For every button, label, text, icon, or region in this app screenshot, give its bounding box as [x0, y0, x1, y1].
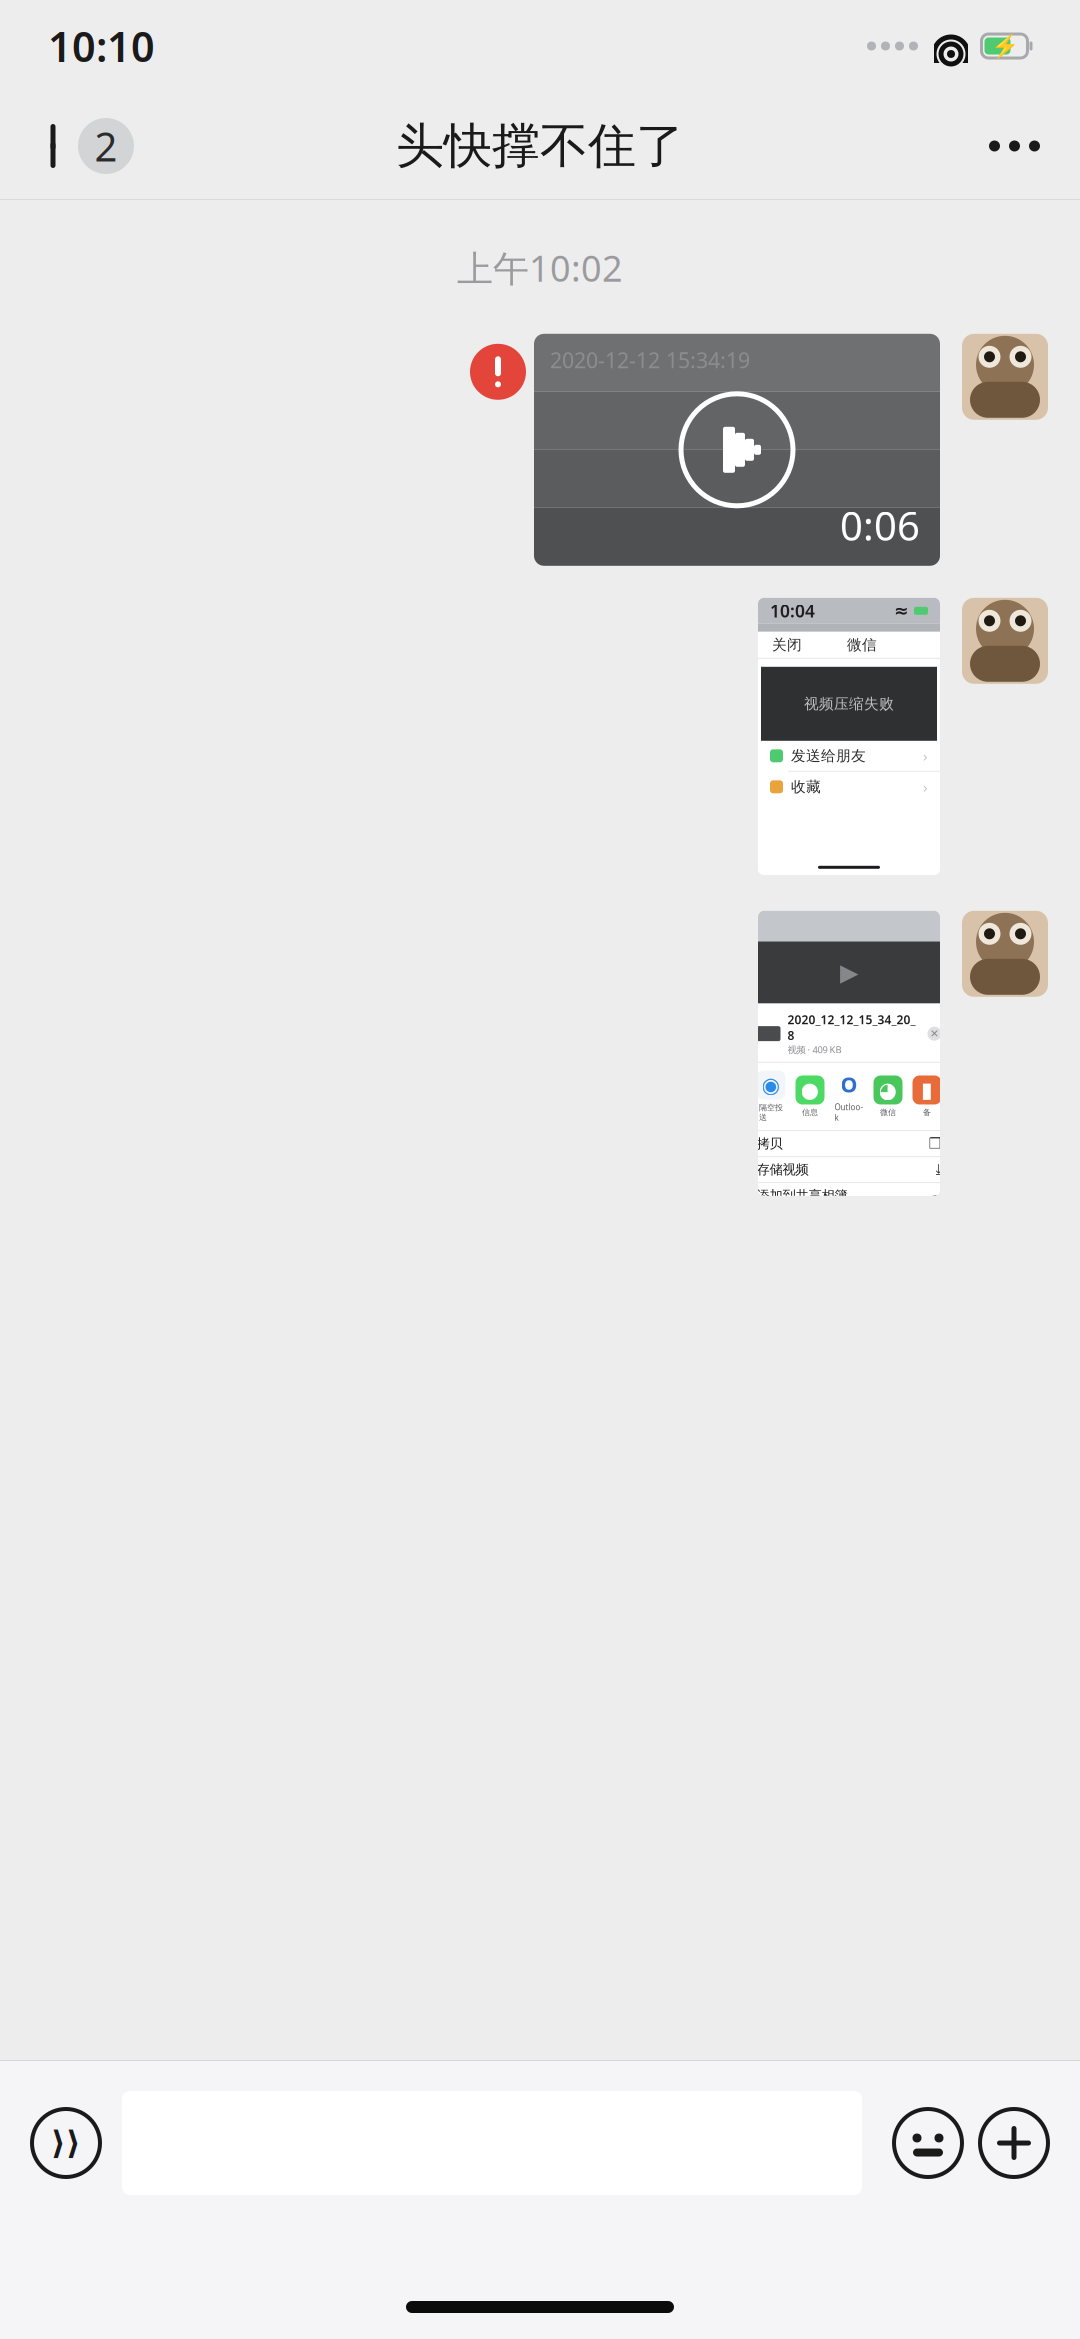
staticText: ⤓ — [935, 1162, 941, 1177]
staticText: 收藏 — [791, 778, 821, 796]
staticText: 隔空投送 — [759, 1103, 783, 1122]
staticText: 微信 — [847, 636, 877, 654]
button[interactable]: Play video, 6 seconds — [534, 334, 940, 566]
button[interactable]: Image message — [758, 598, 940, 875]
button[interactable]: Image message — [758, 911, 940, 1196]
button[interactable]: Emoji — [888, 2095, 968, 2191]
staticText: 存储视频 — [756, 1161, 808, 1178]
staticText: ⚡ — [990, 33, 1018, 59]
staticText: 头快撑不住了 — [396, 116, 684, 175]
staticText: ⟩⟩ — [51, 2125, 81, 2161]
staticText: 2 — [94, 119, 117, 172]
button[interactable]: Resend, failed to send — [462, 334, 534, 410]
staticText: 微信 — [880, 1107, 896, 1117]
staticText: ☁ — [926, 1187, 941, 1204]
staticText: ▶ — [840, 959, 858, 986]
staticText: 发送给朋友 — [791, 747, 866, 765]
staticText: 视频 · 409 KB — [787, 1043, 841, 1056]
staticText: 视频压缩失败 — [804, 695, 894, 713]
staticText: › — [923, 746, 928, 766]
staticText: ◉ — [761, 1073, 780, 1097]
staticText: 2020_12_12_15_34_20_8 — [787, 1011, 915, 1043]
button[interactable]: Contact avatar — [940, 598, 1048, 684]
staticText: 拷贝 — [756, 1135, 782, 1152]
staticText: 信息 — [802, 1107, 818, 1117]
button[interactable]: Contact avatar — [940, 334, 1048, 420]
staticText: › — [923, 777, 928, 797]
staticText: ✕ — [930, 1028, 939, 1040]
staticText: ● — [800, 1078, 819, 1102]
staticText: Outlook — [834, 1102, 863, 1123]
button[interactable]: Voice input — [18, 2095, 114, 2191]
staticText: 10:10 — [48, 19, 155, 73]
staticText: 备 — [923, 1107, 931, 1117]
button[interactable]: Back — [0, 106, 152, 186]
staticText: 添加到共享相簿 — [756, 1187, 847, 1204]
staticText: 上午10:02 — [457, 244, 623, 292]
staticText: 0:06 — [840, 499, 920, 552]
button[interactable]: Contact avatar — [940, 911, 1048, 997]
staticText: ◕ — [878, 1078, 897, 1102]
staticText: ≈ — [894, 601, 909, 621]
staticText: 关闭 — [772, 636, 802, 654]
button[interactable]: More options — [968, 2095, 1060, 2191]
staticText: 2020_12_12_15_34_20_8 — [786, 858, 912, 897]
staticText: 10:04 — [770, 599, 815, 622]
button[interactable]: More — [949, 114, 1080, 177]
staticText: ❐ — [928, 1135, 941, 1152]
staticText: MP4 · 409 KB — [816, 898, 882, 913]
staticText: O — [840, 1070, 857, 1098]
staticText: ▮ — [921, 1078, 933, 1102]
staticText: 2020-12-12 15:34:19 — [550, 346, 750, 374]
